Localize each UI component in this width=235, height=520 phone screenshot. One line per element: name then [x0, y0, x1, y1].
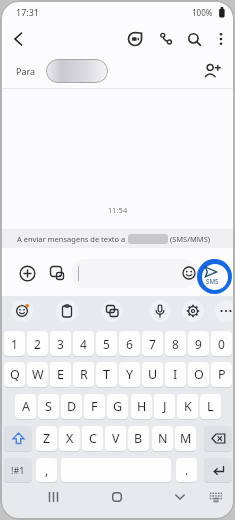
staticText: 11:54: [108, 205, 128, 215]
button[interactable]: Z: [36, 426, 57, 451]
staticText: G: [113, 398, 123, 415]
button[interactable]: [149, 300, 171, 322]
button[interactable]: 0: [211, 331, 232, 356]
button[interactable]: [71, 259, 198, 288]
button[interactable]: N: [152, 426, 173, 451]
button[interactable]: E: [50, 362, 71, 387]
button[interactable]: [4, 426, 32, 451]
staticText: K: [184, 398, 192, 415]
staticText: M: [180, 430, 192, 447]
button[interactable]: I: [165, 362, 186, 387]
button[interactable]: !#1: [4, 458, 32, 482]
button[interactable]: O: [188, 362, 209, 387]
staticText: R: [80, 366, 88, 383]
staticText: Z: [43, 430, 51, 447]
staticText: J: [163, 398, 167, 415]
staticText: T: [103, 366, 110, 383]
button[interactable]: A: [15, 394, 36, 419]
button[interactable]: [206, 489, 226, 505]
staticText: H: [137, 398, 147, 415]
button[interactable]: R: [73, 362, 94, 387]
button[interactable]: T: [96, 362, 117, 387]
staticText: 0: [218, 336, 225, 352]
button[interactable]: 8: [165, 331, 186, 356]
staticText: 9: [195, 336, 202, 352]
button[interactable]: F: [84, 394, 105, 419]
button[interactable]: B: [128, 426, 149, 451]
button[interactable]: [101, 300, 123, 322]
staticText: 2: [34, 336, 41, 352]
button[interactable]: [204, 458, 232, 482]
button[interactable]: [204, 426, 232, 451]
button[interactable]: [183, 28, 205, 50]
button[interactable]: [155, 28, 177, 50]
button[interactable]: [106, 488, 128, 506]
button[interactable]: 6: [119, 331, 140, 356]
staticText: 100%: [192, 7, 213, 18]
button[interactable]: 7: [142, 331, 163, 356]
staticText: 17:31: [16, 6, 40, 18]
button[interactable]: W: [27, 362, 48, 387]
button[interactable]: 2: [27, 331, 48, 356]
button[interactable]: P: [211, 362, 232, 387]
button[interactable]: U: [142, 362, 163, 387]
staticText: Q: [10, 366, 20, 383]
staticText: A: [22, 398, 30, 415]
staticText: (SMS/MMS): [168, 234, 210, 244]
button[interactable]: 1: [4, 331, 25, 356]
button[interactable]: [200, 60, 224, 82]
button[interactable]: D: [61, 394, 82, 419]
button[interactable]: [210, 28, 232, 50]
button[interactable]: Q: [4, 362, 25, 387]
button[interactable]: [46, 262, 68, 284]
staticText: Para: [16, 65, 36, 77]
staticText: N: [158, 430, 168, 447]
button[interactable]: [16, 262, 38, 284]
button[interactable]: [124, 28, 146, 50]
staticText: A enviar mensagens de texto a: [17, 234, 128, 244]
button[interactable]: [46, 59, 108, 83]
button[interactable]: 4: [73, 331, 94, 356]
staticText: P: [218, 366, 226, 383]
button[interactable]: [11, 300, 33, 322]
staticText: 3: [57, 336, 64, 352]
staticText: S: [45, 398, 52, 415]
button[interactable]: [8, 28, 30, 50]
button[interactable]: V: [105, 426, 126, 451]
staticText: V: [112, 430, 120, 447]
button[interactable]: G: [107, 394, 128, 419]
button[interactable]: H: [131, 394, 152, 419]
button[interactable]: J: [154, 394, 175, 419]
button[interactable]: [215, 300, 235, 322]
button[interactable]: X: [59, 426, 80, 451]
button[interactable]: [42, 488, 64, 506]
staticText: !#1: [11, 464, 25, 476]
button[interactable]: [179, 263, 199, 283]
button[interactable]: M: [175, 426, 196, 451]
staticText: 5: [103, 336, 110, 352]
staticText: W: [32, 366, 44, 383]
staticText: SMS: [206, 277, 219, 285]
button[interactable]: SMS: [197, 259, 232, 294]
button[interactable]: 9: [188, 331, 209, 356]
button[interactable]: Y: [119, 362, 140, 387]
button[interactable]: [169, 488, 191, 506]
button[interactable]: 5: [96, 331, 117, 356]
staticText: 1: [11, 336, 18, 352]
staticText: Y: [126, 366, 134, 383]
button[interactable]: [56, 300, 78, 322]
button[interactable]: K: [177, 394, 198, 419]
button[interactable]: L: [200, 394, 221, 419]
staticText: E: [57, 366, 64, 383]
button[interactable]: 3: [50, 331, 71, 356]
button[interactable]: ,: [36, 458, 57, 482]
staticText: 6: [126, 336, 133, 352]
staticText: B: [134, 430, 143, 447]
button[interactable]: C: [82, 426, 103, 451]
button[interactable]: S: [38, 394, 59, 419]
button[interactable]: [182, 300, 204, 322]
staticText: ,: [45, 462, 49, 478]
staticText: L: [207, 398, 214, 415]
button[interactable]: .: [176, 458, 197, 482]
